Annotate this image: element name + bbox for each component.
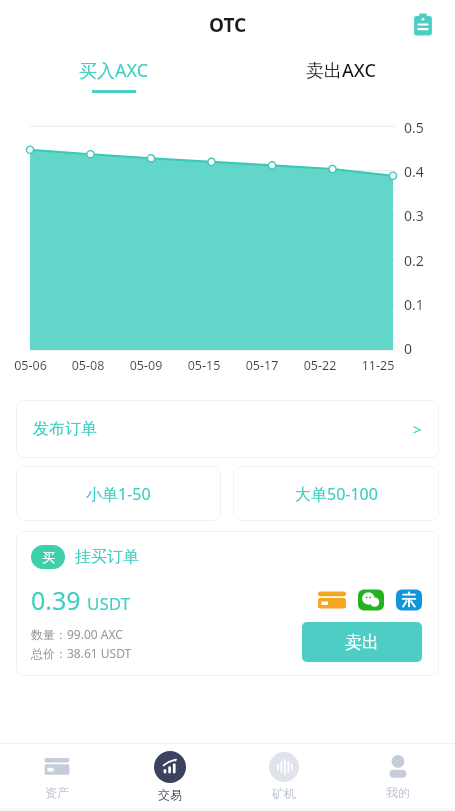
button[interactable]: 矿机 [227, 744, 341, 808]
staticText: 0.4 [404, 162, 424, 181]
button[interactable]: 买 [16, 531, 439, 676]
button[interactable]: 我的 [341, 744, 455, 808]
staticText: 0.2 [404, 251, 424, 270]
staticText: USDT [87, 592, 131, 615]
staticText: 11-25 [349, 357, 407, 374]
staticText: 05-09 [117, 357, 175, 374]
staticText: 0 [404, 339, 413, 358]
staticText: 买 [42, 549, 55, 565]
staticText: 0.3 [404, 206, 424, 225]
staticText: 0.39 [31, 583, 81, 617]
staticText: 卖出AXC [306, 58, 376, 83]
button[interactable]: 卖出AXC [227, 50, 455, 100]
staticText: 我的 [386, 785, 410, 800]
staticText: 05-17 [233, 357, 291, 374]
staticText: 0.5 [404, 118, 424, 137]
staticText: 大单50-100 [295, 483, 378, 505]
staticText: 交易 [158, 787, 182, 802]
staticText: 05-06 [2, 357, 59, 374]
button[interactable]: My Orders [405, 7, 441, 43]
button[interactable]: 交易 [113, 744, 227, 808]
staticText: 买入AXC [79, 58, 149, 83]
staticText: 卖出 [345, 632, 379, 653]
button[interactable]: 卖出 [302, 622, 422, 662]
staticText: 05-15 [175, 357, 233, 374]
staticText: OTC [209, 12, 247, 38]
staticText: 矿机 [272, 786, 296, 801]
staticText: 数量：99.00 AXC [31, 626, 123, 642]
button[interactable]: 资产 [0, 744, 113, 808]
staticText: 资产 [45, 785, 69, 800]
button[interactable]: 发布订单 [16, 400, 439, 458]
staticText: 0.1 [404, 295, 424, 314]
button[interactable]: 大单50-100 [233, 466, 439, 521]
staticText: 发布订单 [33, 419, 97, 439]
staticText: 小单1-50 [86, 483, 151, 505]
staticText: 挂买订单 [75, 547, 139, 567]
button[interactable]: 买入AXC [0, 50, 227, 100]
staticText: 总价：38.61 USDT [31, 645, 132, 661]
staticText: 05-08 [59, 357, 117, 374]
staticText: 05-22 [291, 357, 349, 374]
button[interactable]: 小单1-50 [16, 466, 221, 521]
staticText: > [413, 419, 422, 439]
